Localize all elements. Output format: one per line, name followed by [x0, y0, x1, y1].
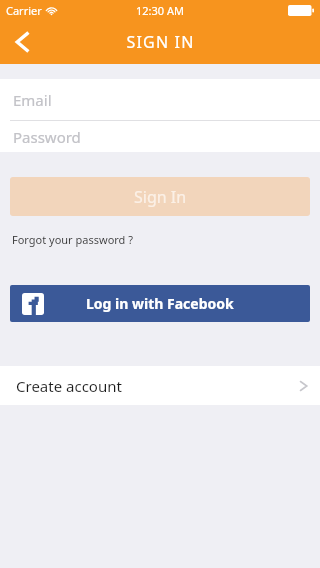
staticText: Email [13, 90, 52, 110]
staticText: SIGN IN [126, 31, 195, 53]
button[interactable]: Log in with Facebook [10, 285, 310, 322]
staticText: 12:30 AM [136, 3, 184, 18]
button[interactable]: Back [0, 20, 44, 64]
button[interactable]: Sign In [10, 177, 310, 216]
staticText: Forgot your password ? [12, 232, 134, 247]
staticText: Sign In [134, 186, 187, 208]
staticText: Carrier [6, 3, 42, 18]
button[interactable]: Forgot your password ? [12, 230, 134, 249]
staticText: Log in with Facebook [86, 294, 234, 313]
staticText: Create account [16, 376, 122, 396]
staticText: Password [13, 127, 81, 147]
button[interactable]: Create account [0, 366, 320, 405]
button[interactable]: Password [0, 121, 320, 152]
button[interactable]: Email [0, 79, 320, 120]
